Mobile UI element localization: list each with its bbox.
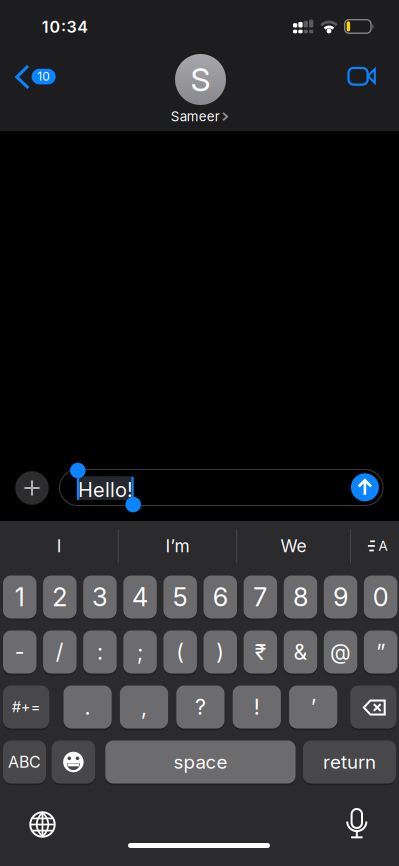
button[interactable]: &: [284, 630, 317, 675]
button[interactable]: -: [3, 630, 36, 675]
button[interactable]: Send: [351, 473, 379, 501]
staticText: @: [330, 639, 351, 665]
button[interactable]: 5: [163, 575, 197, 620]
staticText: 0: [373, 582, 389, 612]
staticText: ?: [195, 694, 206, 720]
button[interactable]: 7: [244, 575, 277, 620]
button[interactable]: Dictate: [344, 808, 370, 839]
staticText: :: [97, 639, 103, 665]
staticText: S: [190, 61, 210, 98]
button[interactable]: 1: [3, 575, 36, 620]
button[interactable]: /: [43, 630, 77, 675]
staticText: A: [378, 538, 387, 554]
staticText: /: [56, 639, 64, 665]
staticText: ,: [141, 694, 147, 720]
staticText: ): [216, 639, 224, 665]
button[interactable]: (: [163, 630, 197, 675]
staticText: 8: [293, 582, 308, 612]
staticText: &: [293, 639, 307, 665]
staticText: Hello!: [78, 478, 133, 501]
button[interactable]: I: [4, 526, 114, 566]
button[interactable]: ?: [176, 685, 224, 730]
staticText: 5: [173, 582, 188, 612]
staticText: 2: [52, 582, 67, 612]
button[interactable]: :: [83, 630, 117, 675]
button[interactable]: Message: [59, 469, 383, 505]
staticText: ₹: [255, 639, 266, 665]
staticText: 7: [253, 582, 267, 612]
button[interactable]: We: [238, 526, 348, 566]
staticText: 3: [92, 582, 108, 612]
button[interactable]: return: [303, 740, 396, 785]
button[interactable]: 3: [83, 575, 117, 620]
staticText: 6: [213, 582, 228, 612]
staticText: 9: [333, 582, 348, 612]
staticText: I: [57, 536, 62, 556]
button[interactable]: 8: [284, 575, 317, 620]
button[interactable]: 0: [364, 575, 397, 620]
staticText: Sameer: [171, 109, 220, 124]
staticText: ;: [137, 639, 143, 665]
button[interactable]: 4: [123, 575, 157, 620]
button[interactable]: Back: [11, 62, 57, 92]
button[interactable]: Delete: [350, 685, 396, 730]
button[interactable]: ”: [364, 630, 397, 675]
staticText: .: [85, 694, 91, 720]
button[interactable]: .: [63, 685, 112, 730]
button[interactable]: Autofill: [363, 536, 389, 557]
staticText: #+=: [12, 698, 41, 716]
button[interactable]: Next keyboard: [29, 811, 56, 838]
button[interactable]: Add attachment: [15, 471, 49, 505]
staticText: 10:34: [42, 18, 88, 36]
staticText: 10: [37, 69, 50, 83]
button[interactable]: 9: [324, 575, 357, 620]
button[interactable]: ₹: [244, 630, 277, 675]
button[interactable]: Emoji: [52, 740, 95, 785]
staticText: ”: [376, 639, 385, 665]
button[interactable]: ;: [123, 630, 157, 675]
button[interactable]: space: [105, 740, 296, 785]
staticText: space: [173, 751, 227, 773]
staticText: 4: [132, 582, 148, 612]
staticText: ’: [311, 694, 316, 720]
button[interactable]: S: [163, 52, 238, 125]
button[interactable]: FaceTime: [344, 63, 378, 90]
staticText: 1: [15, 582, 25, 612]
button[interactable]: @: [324, 630, 357, 675]
button[interactable]: ’: [289, 685, 337, 730]
button[interactable]: #+=: [3, 685, 49, 730]
button[interactable]: ABC: [3, 740, 46, 785]
staticText: ABC: [8, 753, 41, 771]
button[interactable]: 2: [43, 575, 77, 620]
button[interactable]: !: [233, 685, 281, 730]
button[interactable]: I’m: [122, 526, 232, 566]
staticText: -: [15, 639, 25, 665]
staticText: We: [280, 536, 306, 556]
staticText: !: [254, 694, 260, 720]
staticText: (: [176, 639, 184, 665]
staticText: I’m: [165, 536, 189, 556]
button[interactable]: 6: [203, 575, 237, 620]
button[interactable]: ,: [120, 685, 168, 730]
button[interactable]: ): [203, 630, 237, 675]
staticText: return: [323, 751, 376, 773]
